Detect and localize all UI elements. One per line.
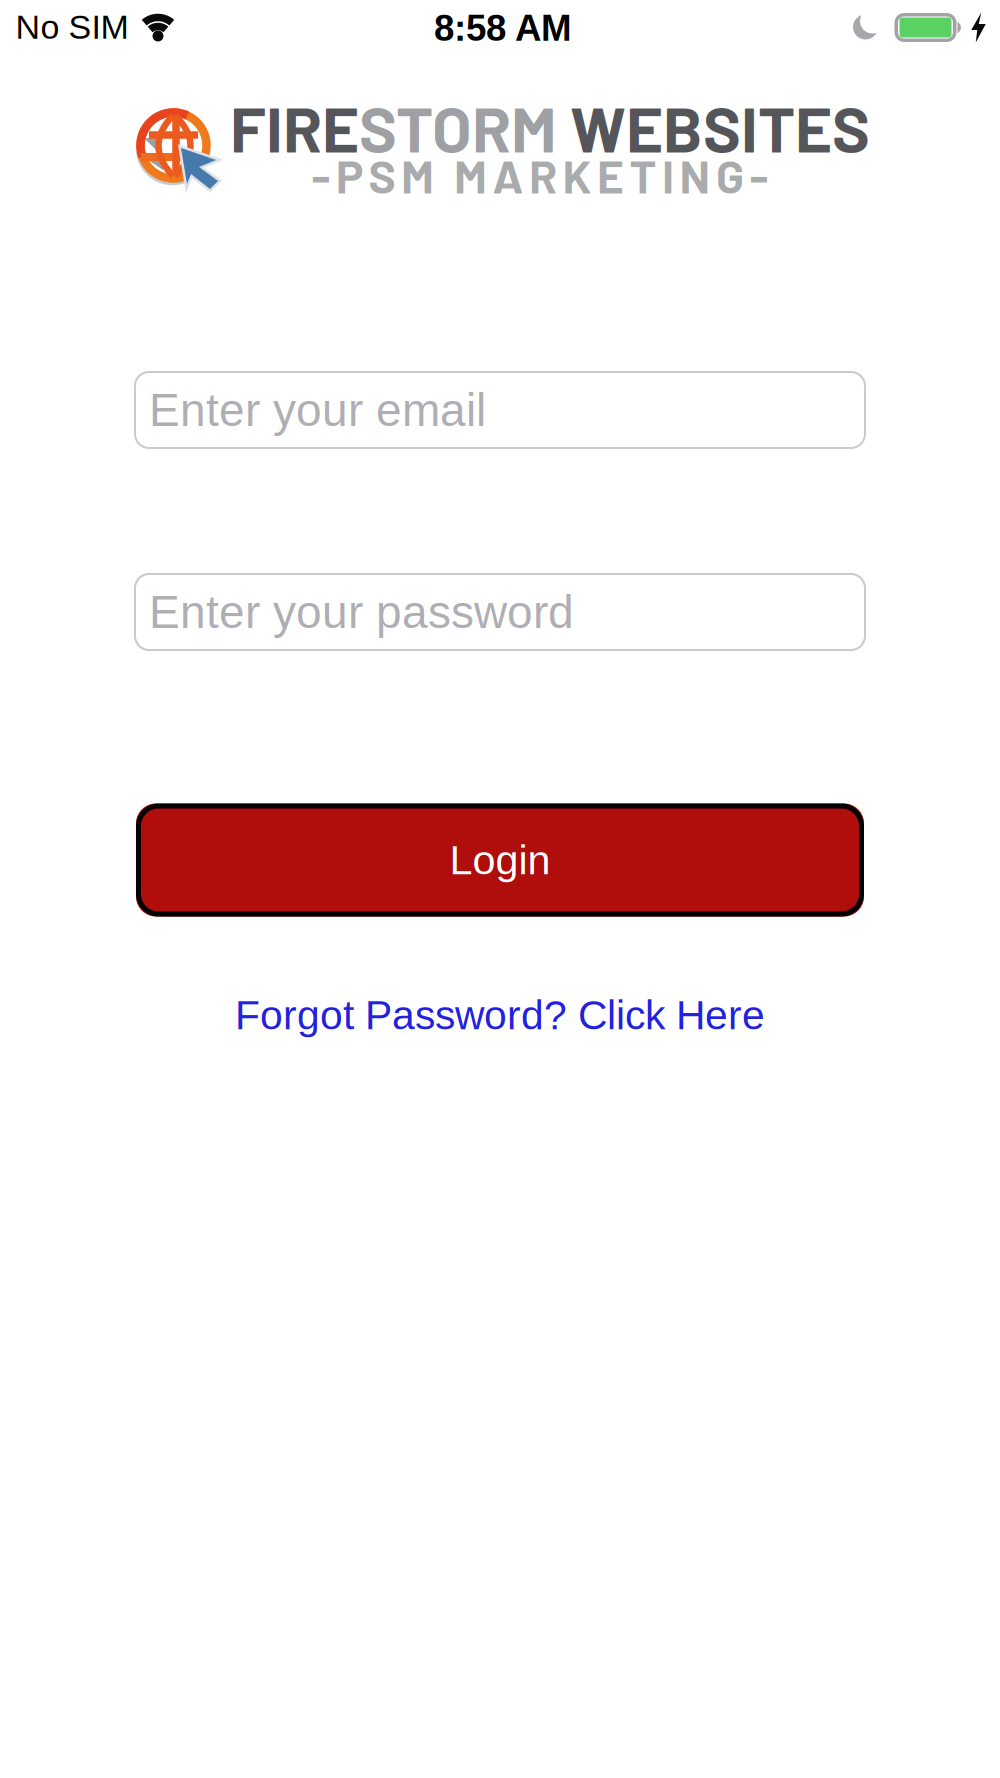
button[interactable]: Forgot Password? Click Here: [235, 992, 765, 1038]
button[interactable]: Enter your password: [134, 573, 866, 651]
staticText: No SIM: [15, 8, 128, 46]
staticText: Enter your email: [149, 384, 486, 436]
staticText: 8:58 AM: [434, 7, 572, 48]
staticText: Enter your password: [149, 586, 574, 638]
staticText: FIRE: [230, 89, 359, 165]
staticText: Forgot Password? Click Here: [235, 992, 765, 1038]
staticText: STORM: [359, 89, 557, 165]
staticText: WEBSITES: [557, 89, 870, 165]
staticText: -PSM MARKETING-: [311, 147, 768, 203]
staticText: Login: [449, 837, 550, 883]
button[interactable]: Login: [136, 803, 864, 916]
button[interactable]: Enter your email: [134, 371, 866, 449]
